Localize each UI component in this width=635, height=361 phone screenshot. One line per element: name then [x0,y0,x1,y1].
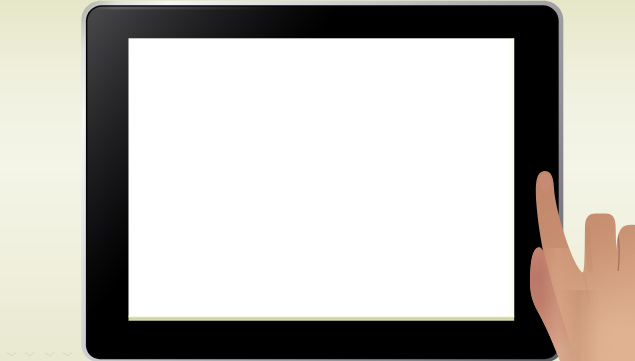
button[interactable]: Tablet with blank screen being tapped by… [0,0,635,361]
